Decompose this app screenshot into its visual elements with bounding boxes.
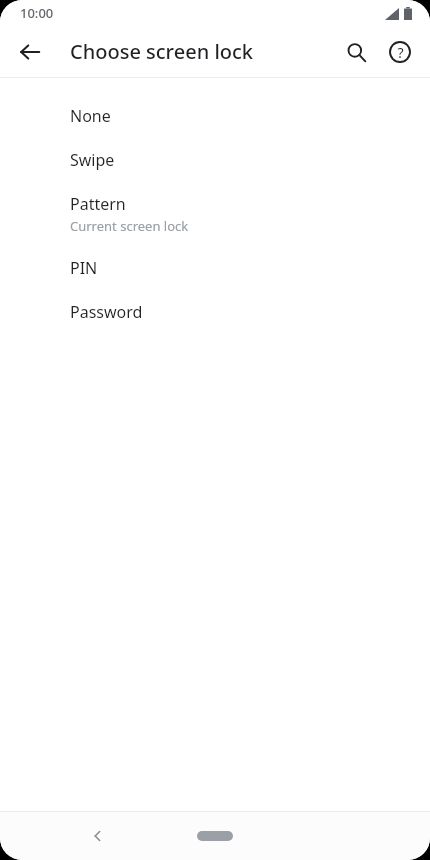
staticText: Pattern xyxy=(70,193,126,215)
button[interactable]: Help xyxy=(378,30,422,74)
staticText: ? xyxy=(397,43,404,62)
button[interactable]: Search xyxy=(334,30,378,74)
staticText: Choose screen lock xyxy=(70,38,253,65)
button[interactable]: Password xyxy=(0,290,430,334)
staticText: None xyxy=(70,105,111,127)
staticText: PIN xyxy=(70,257,98,279)
button[interactable]: None xyxy=(0,94,430,138)
button[interactable]: Back xyxy=(78,816,118,856)
staticText: 10:00 xyxy=(20,4,54,22)
button[interactable]: Pattern xyxy=(0,182,430,246)
button[interactable]: Back xyxy=(8,30,52,74)
staticText: Current screen lock xyxy=(70,217,189,235)
button[interactable]: PIN xyxy=(0,246,430,290)
staticText: Password xyxy=(70,301,143,323)
staticText: Swipe xyxy=(70,149,115,171)
button[interactable]: Home xyxy=(185,824,245,848)
button[interactable]: Swipe xyxy=(0,138,430,182)
